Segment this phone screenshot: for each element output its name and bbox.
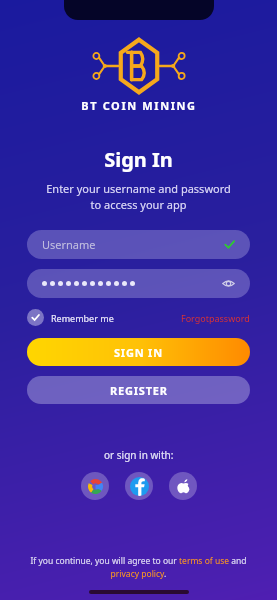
staticText: BT COIN MINING (81, 98, 197, 113)
staticText: Enter your username and password to acce… (46, 181, 231, 212)
button[interactable]: Forgotpassword (181, 312, 250, 324)
staticText: Remember me (51, 312, 114, 324)
other: Show password (222, 277, 235, 290)
staticText: Username (42, 237, 96, 252)
staticText: Sign In (104, 146, 173, 173)
button[interactable]: Sign in with Apple (169, 472, 197, 500)
staticText: or sign in with: (104, 448, 174, 462)
button[interactable]: SIGN IN (27, 338, 250, 366)
button[interactable]: Show password (27, 269, 250, 298)
button[interactable]: Sign in with Google (81, 472, 109, 500)
staticText: REGISTER (110, 383, 168, 398)
staticText: If you continue, you will agree to our t… (18, 555, 259, 580)
button[interactable]: Remember me (27, 309, 114, 326)
button[interactable]: REGISTER (27, 376, 250, 404)
staticText: Forgotpassword (181, 312, 250, 324)
button[interactable]: Username (27, 230, 250, 259)
staticText: SIGN IN (114, 345, 163, 360)
button[interactable]: Sign in with Facebook (125, 472, 153, 500)
